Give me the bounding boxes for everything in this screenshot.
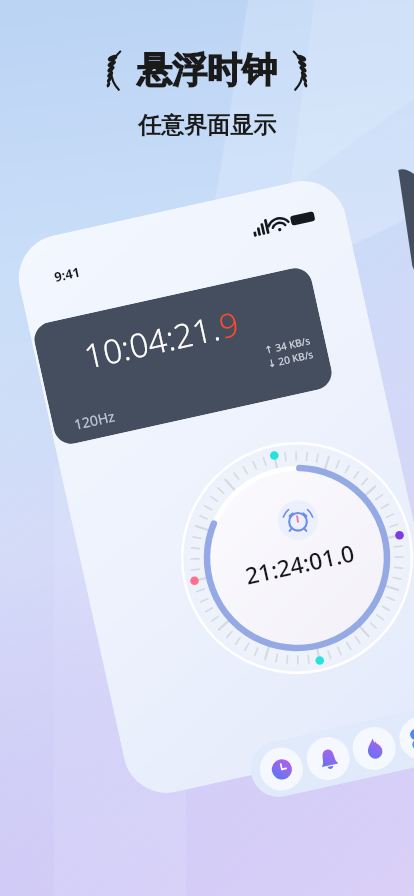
button[interactable]: 21:24:01.0 (181, 442, 413, 674)
button[interactable]: Alarm (302, 733, 354, 784)
button[interactable]: More (395, 712, 414, 764)
staticText: ↓ 20 KB/s (266, 347, 315, 371)
staticText: 10:04:21. (80, 305, 224, 379)
staticText: 悬浮时钟 (137, 48, 277, 92)
staticText: 任意界面显示 (138, 111, 276, 140)
button[interactable]: 10:04:21. (31, 265, 335, 447)
staticText: 9:41 (52, 263, 82, 286)
button[interactable]: Stopwatch (348, 723, 400, 774)
staticText: 21:24:01.0 (242, 536, 357, 591)
staticText: 120Hz (72, 406, 116, 434)
button[interactable]: Clock (256, 743, 307, 795)
staticText: 9 (215, 301, 243, 349)
staticText: ↑ 34 KB/s (263, 333, 312, 357)
